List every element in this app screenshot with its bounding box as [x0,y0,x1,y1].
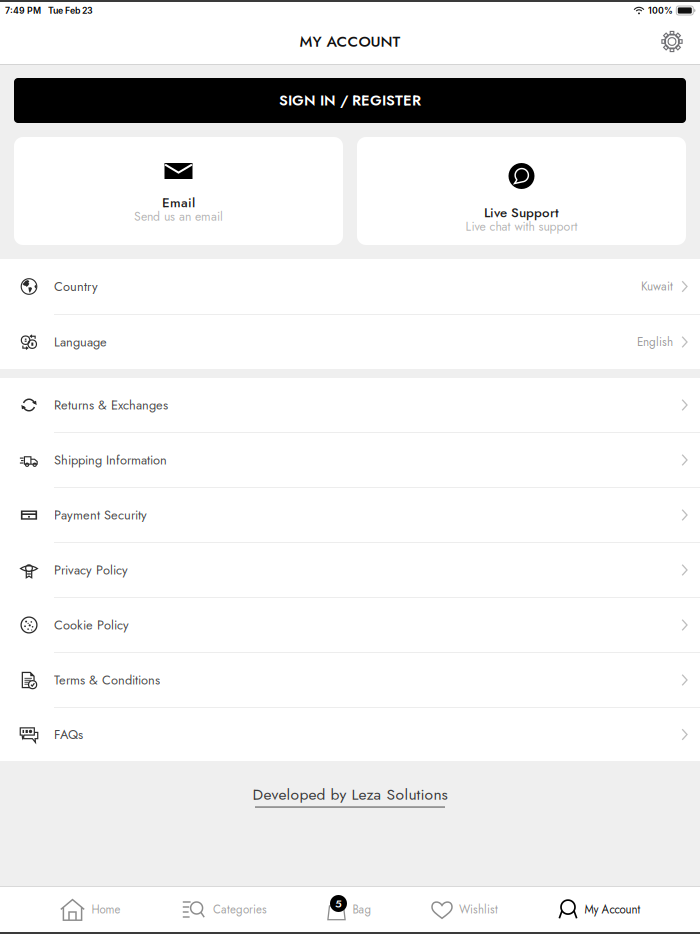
staticText: MY ACCOUNT [299,30,400,53]
button[interactable]: Email [14,137,343,245]
staticText: Privacy Policy [54,561,128,579]
staticText: Payment Security [54,506,147,524]
staticText: Terms & Conditions [54,671,160,689]
button[interactable]: Returns & Exchanges [0,378,700,432]
staticText: English [637,333,673,350]
button[interactable]: Live Support [357,137,686,245]
button[interactable]: FAQs [0,708,700,761]
button[interactable]: 5 [326,887,371,932]
button[interactable]: Home [59,887,120,932]
staticText: Kuwait [641,278,673,295]
staticText: Bag [352,901,371,918]
staticText: Country [54,277,98,296]
staticText: My Account [584,901,640,918]
staticText: Send us an email [134,208,223,225]
staticText: Wishlist [459,901,498,918]
button[interactable]: Language [0,315,700,369]
button[interactable]: Settings [650,19,694,63]
staticText: Home [91,901,120,918]
staticText: Developed by Leza Solutions [252,783,447,805]
button[interactable]: SIGN IN / REGISTER [14,78,686,123]
button[interactable]: Payment Security [0,488,700,542]
staticText: 5 [335,895,342,912]
button[interactable]: Privacy Policy [0,543,700,597]
staticText: FAQs [54,725,83,744]
staticText: Cookie Policy [54,616,129,634]
button[interactable]: Country [0,259,700,314]
button[interactable]: Categories [180,887,267,932]
staticText: Returns & Exchanges [54,396,168,414]
button[interactable]: Wishlist [431,887,498,932]
staticText: Language [54,333,107,351]
button[interactable]: Shipping Information [0,433,700,487]
staticText: 7:49 PM [5,5,41,16]
staticText: Shipping Information [54,451,167,469]
button[interactable]: Cookie Policy [0,598,700,652]
staticText: 100% [648,5,673,16]
staticText: SIGN IN / REGISTER [279,90,421,111]
staticText: Email [162,193,195,212]
staticText: Live chat with support [465,218,577,235]
button[interactable]: Terms & Conditions [0,653,700,707]
staticText: Categories [213,901,267,918]
staticText: Tue Feb 23 [48,5,93,16]
staticText: Live Support [484,203,559,222]
button[interactable]: My Account [557,887,640,932]
button[interactable]: Developed by Leza Solutions [252,783,447,807]
